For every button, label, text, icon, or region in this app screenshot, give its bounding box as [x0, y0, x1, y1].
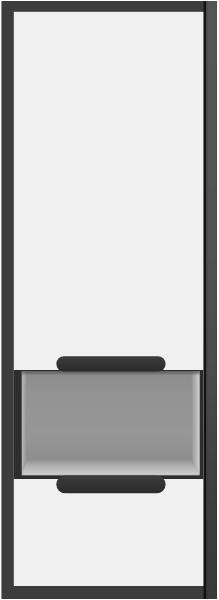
button[interactable]: Tall white cabinet with open drawer — [0, 0, 219, 600]
